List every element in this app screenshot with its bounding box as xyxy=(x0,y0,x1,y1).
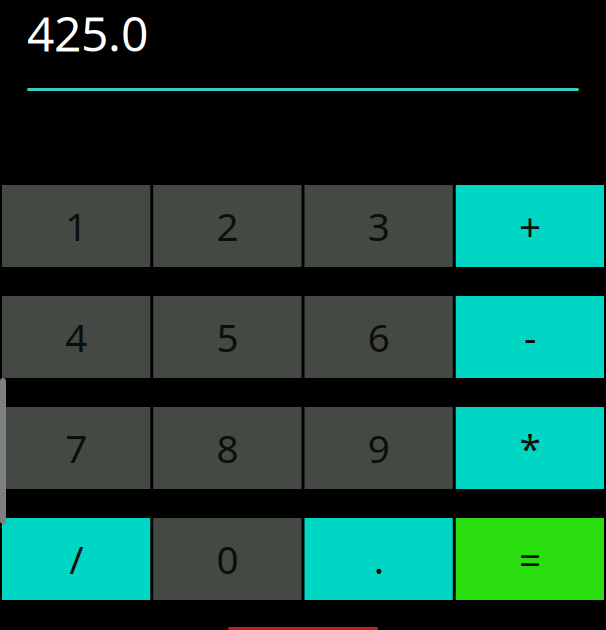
staticText: / xyxy=(69,533,83,585)
button[interactable]: 5 xyxy=(153,296,301,378)
staticText: 8 xyxy=(216,422,238,474)
button[interactable]: 8 xyxy=(153,407,301,489)
button[interactable]: Equals xyxy=(456,518,604,600)
button[interactable]: 7 xyxy=(2,407,150,489)
staticText: 6 xyxy=(368,311,390,363)
button[interactable]: Plus xyxy=(456,185,604,267)
staticText: - xyxy=(524,311,536,363)
staticText: 1 xyxy=(65,200,87,252)
button[interactable]: 9 xyxy=(304,407,453,489)
staticText: 3 xyxy=(368,200,390,252)
staticText: 2 xyxy=(216,200,238,252)
staticText: 5 xyxy=(216,311,238,363)
staticText: 0 xyxy=(216,533,238,585)
staticText: . xyxy=(374,533,384,585)
button[interactable]: 0 xyxy=(153,518,301,600)
staticText: 7 xyxy=(65,422,87,474)
button[interactable]: 4 xyxy=(2,296,150,378)
staticText: + xyxy=(519,200,541,252)
button[interactable]: 1 xyxy=(2,185,150,267)
button[interactable]: Multiply xyxy=(456,407,604,489)
staticText: * xyxy=(519,422,540,474)
staticText: = xyxy=(519,533,541,585)
button[interactable]: 3 xyxy=(304,185,453,267)
button[interactable]: 6 xyxy=(304,296,453,378)
button[interactable]: Divide xyxy=(2,518,150,600)
button[interactable]: Decimal xyxy=(304,518,453,600)
button[interactable]: 2 xyxy=(153,185,301,267)
staticText: 425.0 xyxy=(27,1,148,65)
button[interactable]: Minus xyxy=(456,296,604,378)
staticText: 9 xyxy=(368,422,390,474)
staticText: 4 xyxy=(65,311,87,363)
